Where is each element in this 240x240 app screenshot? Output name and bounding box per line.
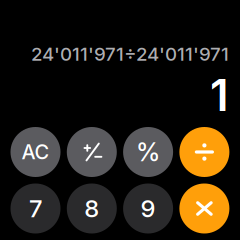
button[interactable]: Divide [179, 127, 229, 177]
staticText: 24'011'971÷24'011'971 [31, 43, 229, 65]
staticText: AC [21, 140, 49, 164]
button[interactable]: Multiply [179, 183, 229, 233]
staticText: % [136, 137, 160, 167]
staticText: 1 [210, 68, 229, 122]
button[interactable]: 7 [10, 183, 60, 233]
button[interactable]: Plus minus [67, 127, 117, 177]
button[interactable]: AC [10, 127, 60, 177]
staticText: 8 [84, 194, 99, 223]
button[interactable]: % [123, 127, 173, 177]
staticText: 9 [141, 194, 156, 223]
button[interactable]: 9 [123, 183, 173, 233]
staticText: 7 [29, 194, 42, 223]
button[interactable]: 8 [67, 183, 117, 233]
